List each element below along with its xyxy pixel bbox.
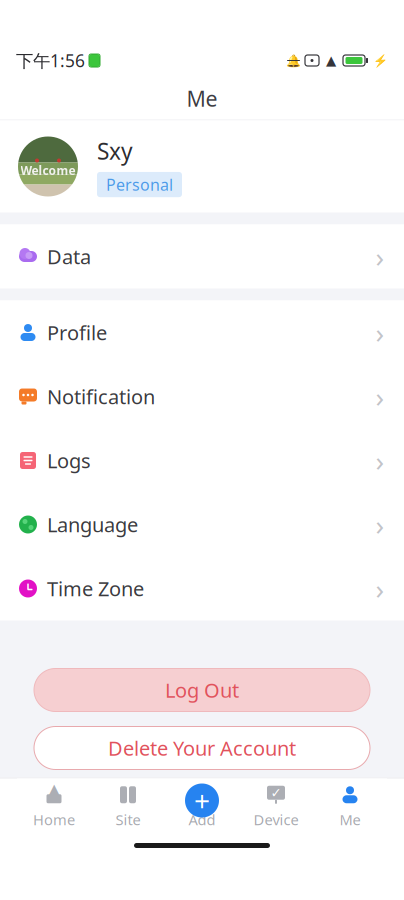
staticText: Logs bbox=[47, 447, 91, 474]
button[interactable]: Profile bbox=[0, 300, 404, 364]
staticText: ▲ bbox=[326, 53, 336, 68]
button[interactable]: Delete Your Account bbox=[34, 726, 370, 769]
staticText: 🔔 bbox=[286, 54, 301, 67]
staticText: ✓ bbox=[270, 785, 281, 800]
staticText: Sxy bbox=[97, 136, 133, 166]
button[interactable]: Site bbox=[91, 780, 165, 832]
staticText: Profile bbox=[47, 319, 107, 346]
button[interactable]: Add bbox=[165, 780, 239, 832]
staticText: Home bbox=[33, 810, 75, 829]
button[interactable]: ▲ bbox=[17, 780, 91, 832]
button[interactable]: Time Zone bbox=[0, 556, 404, 620]
staticText: Delete Your Account bbox=[108, 735, 296, 761]
staticText: Data bbox=[47, 243, 91, 270]
button[interactable]: Logs bbox=[0, 428, 404, 492]
staticText: › bbox=[375, 570, 384, 607]
staticText: Log Out bbox=[165, 677, 239, 703]
button[interactable]: Language bbox=[0, 492, 404, 556]
staticText: ▲ bbox=[47, 780, 60, 800]
staticText: Time Zone bbox=[47, 575, 144, 602]
button[interactable]: Me bbox=[313, 780, 387, 832]
button[interactable]: ✓ bbox=[239, 780, 313, 832]
staticText: Welcome bbox=[20, 162, 75, 178]
staticText: › bbox=[375, 506, 384, 543]
staticText: Add bbox=[188, 810, 215, 829]
staticText: Site bbox=[115, 810, 140, 829]
staticText: Notification bbox=[47, 383, 155, 410]
staticText: › bbox=[375, 378, 384, 415]
staticText: Language bbox=[47, 511, 138, 538]
staticText: Device bbox=[253, 810, 298, 829]
button[interactable]: Log Out bbox=[34, 668, 370, 711]
staticText: › bbox=[375, 314, 384, 351]
staticText: 下午1:56 bbox=[16, 49, 85, 72]
staticText: ⚡ bbox=[373, 54, 388, 67]
staticText: › bbox=[375, 442, 384, 479]
button[interactable]: Add bbox=[182, 780, 222, 820]
staticText: + bbox=[194, 782, 210, 819]
staticText: Me bbox=[186, 84, 217, 113]
staticText: Me bbox=[339, 810, 360, 829]
staticText: › bbox=[375, 238, 384, 275]
button[interactable]: Notification bbox=[0, 364, 404, 428]
staticText: Personal bbox=[106, 174, 173, 195]
button[interactable]: Data bbox=[0, 224, 404, 288]
